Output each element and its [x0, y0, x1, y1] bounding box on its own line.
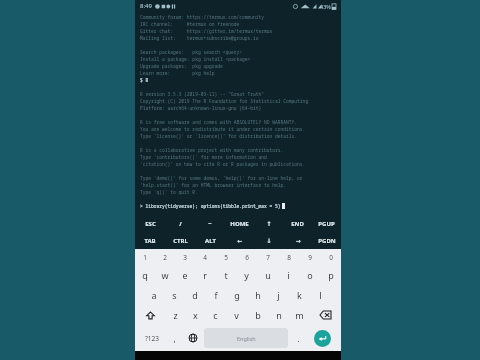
staticText: 2	[163, 253, 167, 262]
staticText: 0	[329, 253, 333, 262]
button[interactable]: 1	[135, 249, 155, 265]
button[interactable]: 8	[278, 249, 299, 265]
button[interactable]: y	[236, 265, 257, 285]
staticText: i	[287, 269, 290, 281]
staticText: ALT	[205, 237, 216, 245]
staticText: e	[182, 269, 188, 281]
button[interactable]: d	[184, 285, 205, 305]
staticText: n	[276, 309, 282, 321]
button[interactable]: END	[283, 215, 312, 232]
staticText: Type 'q()' to quit R.	[140, 189, 198, 195]
staticText: Copyright (C) 2019 The R Foundation for …	[140, 98, 309, 104]
button[interactable]: ,	[166, 328, 183, 348]
staticText: ↑	[266, 220, 272, 227]
staticText: TAB	[144, 237, 156, 245]
button[interactable]: n	[268, 305, 289, 325]
staticText: ESC	[145, 220, 156, 228]
button[interactable]: s	[164, 285, 184, 305]
staticText: j	[277, 289, 280, 301]
staticText: END	[291, 220, 304, 228]
button[interactable]: .	[290, 328, 307, 348]
staticText: a	[151, 289, 157, 301]
button[interactable]: c	[205, 305, 226, 325]
button[interactable]: k	[289, 285, 310, 305]
staticText: Type 'contributors()' for more informati…	[140, 154, 267, 160]
staticText: You are welcome to redistribute it under…	[140, 126, 306, 132]
staticText: English	[237, 335, 256, 342]
button[interactable]: 3	[175, 249, 195, 265]
staticText: R is free software and comes with ABSOLU…	[140, 119, 298, 125]
button[interactable]: r	[195, 265, 215, 285]
staticText: PGUP	[318, 220, 335, 228]
button[interactable]: 9	[299, 249, 320, 265]
button[interactable]: ESC	[135, 215, 165, 232]
staticText: s	[172, 289, 177, 301]
staticText: r	[203, 269, 207, 281]
button[interactable]: TAB	[135, 232, 165, 249]
button[interactable]: 2	[155, 249, 175, 265]
button[interactable]: a	[144, 285, 164, 305]
button[interactable]: p	[320, 265, 341, 285]
button[interactable]: b	[247, 305, 268, 325]
button[interactable]: e	[175, 265, 195, 285]
button[interactable]: CTRL	[165, 232, 195, 249]
staticText: f	[214, 289, 218, 301]
button[interactable]: ↑	[254, 215, 283, 232]
staticText: h	[255, 289, 261, 301]
button[interactable]: t	[215, 265, 236, 285]
button[interactable]: m	[289, 305, 310, 325]
button[interactable]: z	[165, 305, 185, 325]
button[interactable]: PGUP	[312, 215, 341, 232]
staticText: 3	[183, 253, 187, 262]
staticText: l	[319, 289, 322, 301]
button[interactable]: −	[195, 215, 225, 232]
button[interactable]: v	[226, 305, 247, 325]
button[interactable]: 7	[257, 249, 278, 265]
button[interactable]: ↓	[254, 232, 283, 249]
button[interactable]: ?123	[138, 328, 166, 348]
staticText: ?123	[145, 334, 159, 343]
button[interactable]: f	[205, 285, 226, 305]
button[interactable]: g	[226, 285, 247, 305]
button[interactable]: ←	[225, 232, 254, 249]
button[interactable]: 5	[215, 249, 236, 265]
button[interactable]: Change keyboard language	[183, 328, 202, 348]
button[interactable]: English	[204, 328, 288, 348]
button[interactable]: l	[310, 285, 331, 305]
staticText: q	[142, 269, 148, 281]
staticText: 'citation()' on how to cite R or R packa…	[140, 161, 306, 167]
button[interactable]: Shift	[135, 305, 165, 325]
button[interactable]: HOME	[225, 215, 254, 232]
button[interactable]: Backspace	[310, 305, 341, 325]
staticText: .	[297, 333, 300, 344]
button[interactable]: u	[257, 265, 278, 285]
button[interactable]: o	[299, 265, 320, 285]
button[interactable]: q	[135, 265, 155, 285]
button[interactable]: i	[278, 265, 299, 285]
button[interactable]: h	[247, 285, 268, 305]
staticText: Platform: aarch64-unknown-linux-gnu (64-…	[140, 105, 262, 111]
staticText: 8:49	[140, 2, 152, 10]
button[interactable]: →	[283, 232, 312, 249]
staticText: CTRL	[173, 237, 188, 245]
staticText: o	[307, 269, 313, 281]
staticText: Upgrade packages: pkg upgrade	[140, 63, 223, 69]
staticText: y	[244, 269, 249, 281]
staticText: R version 3.5.3 (2019-03-11) -- "Great T…	[140, 91, 265, 97]
staticText: g	[234, 289, 240, 301]
staticText: ←	[237, 237, 243, 244]
staticText: c	[213, 309, 218, 321]
staticText: 43%	[320, 3, 331, 10]
button[interactable]: 0	[320, 249, 341, 265]
button[interactable]: x	[185, 305, 205, 325]
staticText: v	[234, 309, 239, 321]
button[interactable]: ALT	[195, 232, 225, 249]
staticText: u	[265, 269, 271, 281]
button[interactable]: j	[268, 285, 289, 305]
button[interactable]: 4	[195, 249, 215, 265]
button[interactable]: 6	[236, 249, 257, 265]
button[interactable]: PGDN	[312, 232, 341, 249]
button[interactable]: /	[165, 215, 195, 232]
button[interactable]: w	[155, 265, 175, 285]
button[interactable]: Enter	[314, 330, 331, 347]
